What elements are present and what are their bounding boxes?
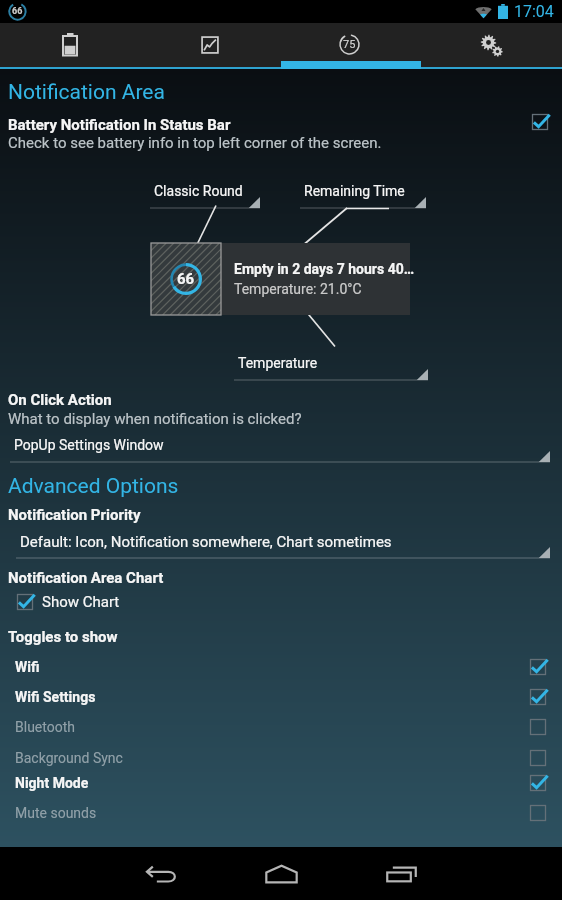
button[interactable]: Show Chart xyxy=(12,591,120,613)
staticText: Temperature xyxy=(238,355,318,371)
button[interactable]: Wifi xyxy=(0,655,562,679)
staticText: Bluetooth xyxy=(15,719,529,735)
staticText: Battery Notification In Status Bar xyxy=(8,116,231,134)
staticText: Check to see battery info in top left co… xyxy=(8,134,382,152)
staticText: On Click Action xyxy=(8,391,112,409)
button[interactable]: Night Mode xyxy=(0,771,562,795)
button[interactable]: Battery xyxy=(0,23,140,67)
staticText: Notification Area xyxy=(8,80,165,105)
button[interactable]: PopUp Settings Window xyxy=(10,433,550,463)
button[interactable]: Classic Round xyxy=(150,179,260,209)
staticText: 17:04 xyxy=(514,2,554,21)
staticText: Default: Icon, Notification somewhere, C… xyxy=(20,533,392,551)
button[interactable]: Home xyxy=(221,847,341,900)
staticText: Wifi xyxy=(15,659,529,675)
staticText: Background Sync xyxy=(15,750,529,766)
button[interactable]: Default: Icon, Notification somewhere, C… xyxy=(16,529,550,559)
button[interactable]: 66 xyxy=(151,243,410,315)
staticText: What to display when notification is cli… xyxy=(8,410,302,428)
staticText: Empty in 2 days 7 hours 40… xyxy=(234,261,415,277)
button[interactable]: Back xyxy=(101,847,221,900)
button[interactable]: Recent apps xyxy=(341,847,461,900)
staticText: Show Chart xyxy=(42,593,120,611)
button[interactable]: Bluetooth xyxy=(0,715,562,739)
staticText: Notification Area Chart xyxy=(8,569,164,587)
staticText: Notification Priority xyxy=(8,506,141,524)
staticText: PopUp Settings Window xyxy=(14,437,164,453)
staticText: 66 xyxy=(177,270,195,288)
staticText: Toggles to show xyxy=(8,628,118,646)
staticText: Temperature: 21.0°C xyxy=(234,281,362,297)
staticText: Advanced Options xyxy=(8,474,179,499)
button[interactable]: Background Sync xyxy=(0,746,562,770)
staticText: 75 xyxy=(343,38,356,51)
button[interactable]: Mute sounds xyxy=(0,801,562,825)
button[interactable]: Temperature xyxy=(234,351,428,381)
button[interactable]: Settings xyxy=(421,23,562,67)
staticText: 66 xyxy=(12,6,23,17)
staticText: Wifi Settings xyxy=(15,689,529,705)
staticText: Night Mode xyxy=(15,775,529,791)
button[interactable]: Battery notification in status bar check… xyxy=(524,106,556,138)
button[interactable]: Remaining Time xyxy=(300,179,426,209)
button[interactable]: Wifi Settings xyxy=(0,685,562,709)
button[interactable]: History chart xyxy=(140,23,280,67)
staticText: Classic Round xyxy=(154,183,243,199)
button[interactable]: Notification xyxy=(280,23,421,67)
staticText: Remaining Time xyxy=(304,183,405,199)
staticText: Mute sounds xyxy=(15,805,529,821)
